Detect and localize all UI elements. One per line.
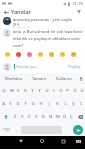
button[interactable]: Emoji (46, 49, 57, 60)
staticText: I (53, 88, 55, 94)
staticText: aeiu_a Bunushood ne çok hazırlanan (13, 29, 82, 35)
button[interactable]: Ş (69, 97, 77, 110)
button[interactable]: W (8, 84, 15, 97)
button[interactable]: Z (11, 110, 19, 123)
staticText: Q (2, 88, 6, 94)
staticText: İ (80, 101, 82, 107)
staticText: C (28, 114, 31, 120)
button[interactable]: Q (0, 84, 8, 97)
button[interactable]: P (64, 84, 71, 97)
button[interactable]: X (19, 110, 26, 123)
staticText: V (35, 114, 38, 120)
staticText: Tamam (32, 76, 46, 81)
staticText: F (24, 101, 27, 107)
staticText: N (49, 114, 53, 120)
button[interactable]: M (54, 110, 61, 123)
staticText: S (9, 101, 12, 107)
staticText: Ö (63, 114, 67, 120)
button[interactable]: Ğ (71, 84, 78, 97)
button[interactable]: Send (73, 125, 83, 135)
button[interactable]: Kullanıcı (51, 73, 76, 84)
button[interactable]: D (14, 97, 21, 110)
staticText: Y (38, 88, 41, 94)
staticText: M (56, 114, 60, 120)
staticText: O (59, 88, 63, 94)
button[interactable]: Y (36, 84, 43, 97)
staticText: J (48, 101, 50, 107)
staticText: B (42, 114, 45, 120)
staticText: amazing personas · yeni sayfa (13, 17, 72, 23)
button[interactable]: A (0, 97, 7, 110)
button[interactable]: İ (77, 97, 85, 110)
staticText: Ü (80, 88, 84, 94)
button[interactable]: Filter (75, 8, 83, 16)
staticText: com? (13, 43, 24, 49)
staticText: Z (14, 114, 17, 120)
button[interactable]: Voice input (76, 73, 85, 84)
staticText: Merhaba (5, 76, 22, 81)
button[interactable]: ?123 (0, 123, 13, 136)
button[interactable]: K (53, 97, 61, 110)
staticText: 11:19 (72, 1, 83, 7)
button[interactable]: F (21, 97, 29, 110)
button[interactable]: Emoji (57, 49, 68, 60)
button[interactable]: , (13, 123, 21, 136)
button[interactable]: J (45, 97, 53, 110)
button[interactable]: Merhaba (0, 73, 26, 84)
button[interactable]: Ü (78, 84, 85, 97)
button[interactable]: Emoji (35, 49, 46, 60)
staticText: . (65, 127, 67, 132)
staticText: ?123 (3, 128, 10, 132)
button[interactable]: Ç (68, 110, 75, 123)
staticText: Ş (72, 101, 75, 107)
staticText: R (24, 88, 27, 94)
staticText: Ğ (73, 88, 77, 94)
button[interactable]: Emoji (2, 49, 13, 60)
staticText: Kullanıcı (56, 76, 72, 81)
button[interactable]: aeiu_a Bunushood ne çok hazırlanan (0, 28, 85, 49)
button[interactable]: R (22, 84, 29, 97)
button[interactable]: Emoji (24, 49, 35, 60)
button[interactable]: C (26, 110, 33, 123)
button[interactable]: H (37, 97, 45, 110)
button[interactable]: Emoji (68, 49, 79, 60)
button[interactable]: S (7, 97, 14, 110)
button[interactable]: U (43, 84, 50, 97)
button[interactable]: B (40, 110, 47, 123)
staticText: H (39, 101, 43, 107)
button[interactable]: Home (37, 136, 47, 146)
button[interactable]: Backspace (75, 110, 85, 123)
button[interactable]: O (57, 84, 64, 97)
button[interactable]: Shift (0, 110, 11, 123)
staticText: T (31, 88, 34, 94)
staticText: L (64, 101, 67, 107)
button[interactable]: Tamam (26, 73, 51, 84)
staticText: İyi Günler! (13, 26, 30, 28)
staticText: A (2, 101, 5, 107)
staticText: D (16, 101, 20, 107)
button[interactable]: G (29, 97, 37, 110)
button[interactable]: Emoji (13, 49, 24, 60)
staticText: P (66, 88, 69, 94)
staticText: Yanıtını yaz... (16, 64, 39, 69)
staticText: etkinlik ve paylaşım ahlaklarınızdır (13, 36, 81, 42)
button[interactable]: amazing personas · yeni sayfa (0, 16, 85, 28)
button[interactable]: Ö (61, 110, 68, 123)
staticText: K (56, 101, 59, 107)
staticText: Paylaş (68, 64, 81, 70)
button[interactable]: V (33, 110, 40, 123)
button[interactable]: Back (2, 8, 10, 16)
button[interactable]: E (15, 84, 22, 97)
button[interactable]: Paylaş (67, 63, 82, 71)
staticText: E (17, 88, 20, 94)
button[interactable]: Hide keyboard (73, 136, 83, 146)
button[interactable]: Recents (58, 136, 68, 146)
button[interactable]: Back (16, 136, 26, 146)
staticText: , (16, 127, 18, 132)
button[interactable]: L (61, 97, 69, 110)
button[interactable]: T (29, 84, 36, 97)
button[interactable]: I (50, 84, 57, 97)
button[interactable]: N (47, 110, 54, 123)
